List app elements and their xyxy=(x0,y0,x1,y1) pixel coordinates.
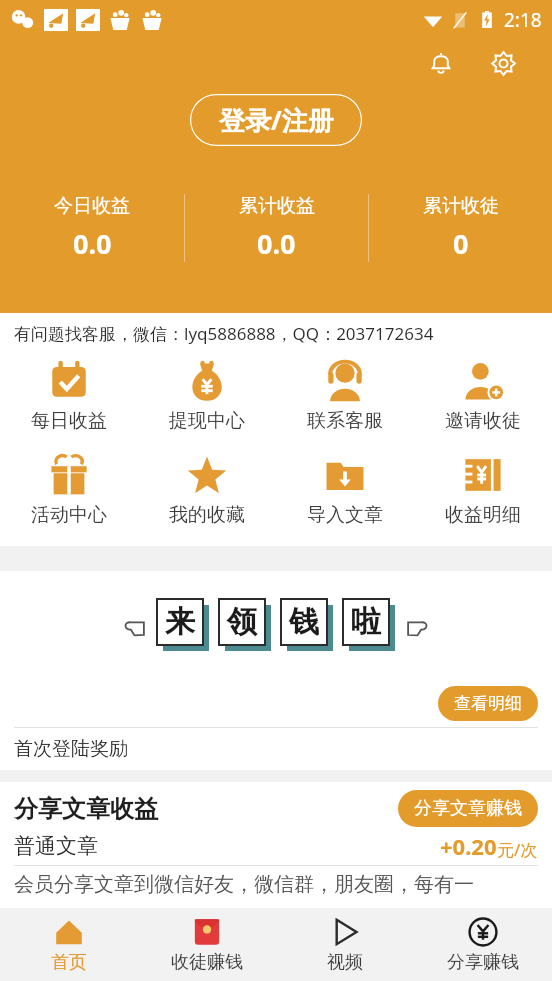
staticText: 0.0 xyxy=(73,225,112,262)
staticText: 联系客服 xyxy=(307,409,383,433)
staticText: 每日收益 xyxy=(31,409,107,433)
staticText: 邀请收徒 xyxy=(445,409,521,433)
button[interactable]: 联系客服 xyxy=(276,353,414,439)
staticText: 0.0 xyxy=(257,225,296,262)
button[interactable]: 累计收益 xyxy=(185,194,368,262)
button[interactable]: 收徒赚钱 xyxy=(138,908,276,981)
staticText: 视频 xyxy=(327,951,363,974)
staticText: +0.20 xyxy=(440,831,497,861)
staticText: 累计收徒 xyxy=(423,194,499,218)
button[interactable]: 邀请收徒 xyxy=(414,353,552,439)
staticText: 啦 xyxy=(351,603,381,641)
staticText: 今日收益 xyxy=(54,194,130,218)
button[interactable]: 分享文章赚钱 xyxy=(398,790,538,827)
staticText: 0 xyxy=(453,225,469,262)
staticText: 登录/注册 xyxy=(219,102,334,138)
staticText: 分享文章收益 xyxy=(14,794,158,824)
button[interactable]: 活动中心 xyxy=(0,447,138,533)
staticText: 分享赚钱 xyxy=(447,951,519,974)
button[interactable]: Notifications xyxy=(418,40,464,86)
staticText: 首页 xyxy=(51,951,87,974)
staticText: 提现中心 xyxy=(169,409,245,433)
staticText: 我的收藏 xyxy=(169,503,245,527)
staticText: 收徒赚钱 xyxy=(171,951,243,974)
button[interactable]: Settings xyxy=(480,40,526,86)
button[interactable]: 来 xyxy=(0,571,552,679)
button[interactable]: 查看明细 xyxy=(438,686,538,721)
staticText: 首次登陆奖励 xyxy=(14,737,128,761)
staticText: 导入文章 xyxy=(307,503,383,527)
button[interactable]: 登录/注册 xyxy=(190,94,362,146)
staticText: 会员分享文章到微信好友，微信群，朋友圈，每有一 xyxy=(14,872,474,897)
button[interactable]: 我的收藏 xyxy=(138,447,276,533)
staticText: 2:18 xyxy=(504,7,542,33)
button[interactable]: 每日收益 xyxy=(0,353,138,439)
button[interactable]: 收益明细 xyxy=(414,447,552,533)
button[interactable]: 导入文章 xyxy=(276,447,414,533)
staticText: 有问题找客服，微信：lyq5886888，QQ：2037172634 xyxy=(14,322,434,345)
button[interactable]: 提现中心 xyxy=(138,353,276,439)
button[interactable]: 首页 xyxy=(0,908,138,981)
staticText: 查看明细 xyxy=(454,693,522,714)
button[interactable]: 今日收益 xyxy=(0,194,184,262)
staticText: 分享文章赚钱 xyxy=(414,797,522,820)
staticText: 领 xyxy=(227,603,257,641)
staticText: 收益明细 xyxy=(445,503,521,527)
staticText: 元/次 xyxy=(497,838,538,861)
staticText: 累计收益 xyxy=(239,194,315,218)
staticText: 来 xyxy=(165,603,195,641)
staticText: 钱 xyxy=(289,603,319,641)
button[interactable]: 分享赚钱 xyxy=(414,908,552,981)
staticText: 普通文章 xyxy=(14,833,98,859)
button[interactable]: 视频 xyxy=(276,908,414,981)
button[interactable]: 累计收徒 xyxy=(369,194,552,262)
staticText: 活动中心 xyxy=(31,503,107,527)
